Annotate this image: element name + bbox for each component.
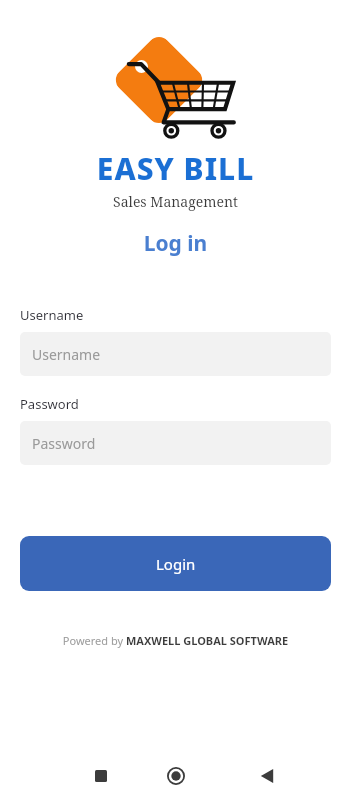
- button[interactable]: Username: [20, 332, 331, 376]
- staticText: Username: [20, 306, 84, 324]
- button[interactable]: Login: [20, 536, 331, 591]
- staticText: Sales Management: [0, 192, 351, 211]
- staticText: Powered by MAXWELL GLOBAL SOFTWARE: [0, 633, 351, 648]
- staticText: EASY BILL: [0, 148, 351, 189]
- button[interactable]: Back: [251, 760, 283, 792]
- staticText: Password: [32, 434, 96, 453]
- staticText: Log in: [0, 229, 351, 258]
- button[interactable]: Home: [159, 759, 193, 793]
- button[interactable]: Recent apps: [85, 760, 117, 792]
- staticText: Username: [32, 345, 101, 364]
- staticText: Password: [20, 395, 79, 413]
- staticText: Login: [156, 554, 196, 574]
- button[interactable]: Password: [20, 421, 331, 465]
